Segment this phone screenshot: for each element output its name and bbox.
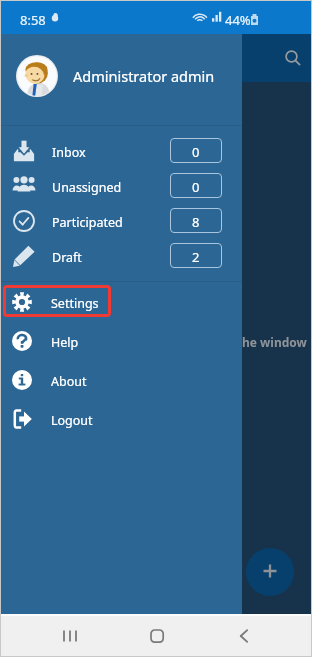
button[interactable]: Unassigned	[0, 168, 242, 203]
button[interactable]: Search	[280, 45, 306, 71]
staticText: 2	[192, 248, 200, 266]
button[interactable]: Settings	[0, 282, 242, 321]
staticText: Help	[51, 334, 79, 351]
staticText: Participated	[52, 214, 123, 231]
staticText: 8:58	[20, 11, 46, 29]
staticText: he window	[242, 334, 307, 350]
staticText: Administrator admin	[73, 66, 215, 86]
button[interactable]: Administrator admin	[0, 34, 242, 125]
staticText: Settings	[51, 295, 99, 312]
staticText: 8	[192, 213, 200, 231]
staticText: Unassigned	[52, 179, 122, 196]
staticText: 0	[192, 178, 200, 196]
staticText: About	[51, 373, 87, 390]
button[interactable]: Participated	[0, 203, 242, 238]
staticText: Logout	[51, 412, 93, 429]
button[interactable]: Logout	[0, 399, 242, 438]
button[interactable]: Add	[246, 548, 294, 596]
button[interactable]: About	[0, 360, 242, 399]
button[interactable]: Draft	[0, 238, 242, 273]
button[interactable]: Home	[137, 614, 177, 657]
button[interactable]: Help	[0, 321, 242, 360]
button[interactable]: Recent apps	[50, 614, 90, 657]
staticText: 44%	[225, 11, 251, 29]
staticText: 0	[192, 143, 200, 161]
button[interactable]: Inbox	[0, 133, 242, 168]
button[interactable]: Back	[224, 614, 264, 657]
staticText: Draft	[52, 249, 82, 266]
staticText: Inbox	[52, 144, 86, 161]
